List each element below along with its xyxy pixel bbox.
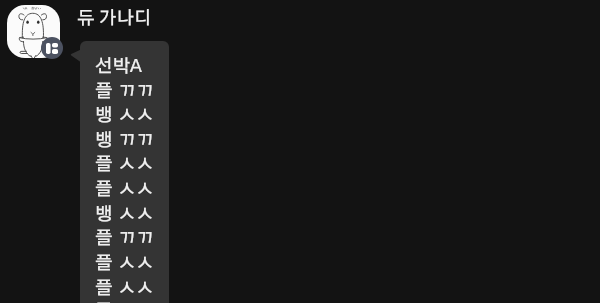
button[interactable]: 선박A xyxy=(80,41,169,303)
staticText: 플 xyxy=(95,255,113,273)
staticText: 뱅 xyxy=(95,206,113,224)
staticText: ㅅㅅ xyxy=(118,280,154,298)
staticText: ㅅㅅ xyxy=(118,107,154,125)
staticText: 뱅 xyxy=(95,132,113,150)
staticText: 뱅 xyxy=(95,107,113,125)
staticText: ㄲㄲ xyxy=(118,132,154,150)
staticText: ㄲㄲ xyxy=(118,230,154,248)
staticText: 플 xyxy=(95,230,113,248)
staticText: ㄲㄲ xyxy=(118,83,154,101)
button[interactable]: Profile picture xyxy=(7,5,63,61)
staticText: ㅅㅅ xyxy=(118,255,154,273)
staticText: 선박A xyxy=(95,58,142,76)
staticText: 플 xyxy=(95,280,113,298)
staticText: 플 xyxy=(95,156,113,174)
staticText: ㅅㅅ xyxy=(118,206,154,224)
staticText: 플 xyxy=(95,181,113,199)
button[interactable]: 듀 가나디 xyxy=(77,10,152,28)
staticText: ㅅㅅ xyxy=(118,181,154,199)
staticText: ㅅㅅ xyxy=(118,156,154,174)
staticText: 플 xyxy=(95,83,113,101)
